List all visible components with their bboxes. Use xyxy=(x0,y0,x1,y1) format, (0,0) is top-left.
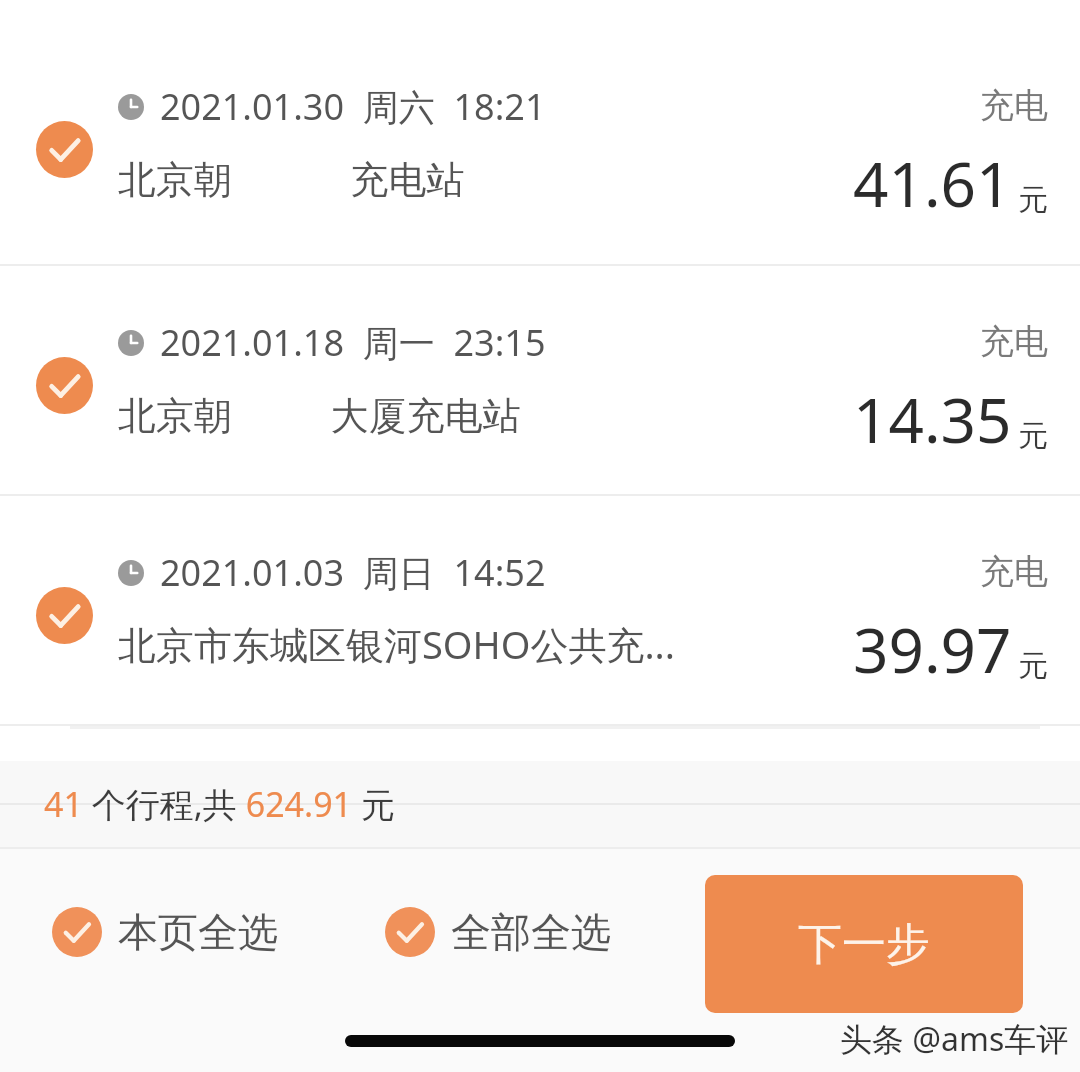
button[interactable]: 2021.01.18 周一 23:15 xyxy=(0,266,1080,494)
staticText: 41.61 xyxy=(853,141,1012,225)
staticText: 元 xyxy=(1018,181,1048,219)
staticText: 充电 xyxy=(980,550,1048,593)
button[interactable]: 本页全选 xyxy=(52,907,278,957)
staticText: 2021.01.03 周日 14:52 xyxy=(160,548,546,597)
staticText: 下一步 xyxy=(798,917,930,972)
staticText: 全部全选 xyxy=(451,907,611,957)
staticText: 41 个行程,共 624.91 元 xyxy=(44,781,395,827)
staticText: 2021.01.18 周一 23:15 xyxy=(160,318,546,367)
staticText: 元 xyxy=(1018,417,1048,455)
staticText: 充电 xyxy=(980,320,1048,363)
staticText: 本页全选 xyxy=(118,907,278,957)
staticText: 元 xyxy=(1018,647,1048,685)
button[interactable]: 2021.01.03 周日 14:52 xyxy=(0,496,1080,724)
button[interactable]: 2021.01.30 周六 18:21 xyxy=(0,0,1080,264)
staticText: 北京市东城区银河SOHO公共充... xyxy=(118,618,675,670)
staticText: 充电 xyxy=(980,84,1048,127)
staticText: 头条 @ams车评 xyxy=(840,1017,1069,1061)
staticText: 39.97 xyxy=(853,607,1012,691)
other: Home indicator xyxy=(345,1035,735,1047)
staticText: 北京朝 大厦充电站 xyxy=(118,388,521,440)
button[interactable]: 下一步 xyxy=(705,875,1023,1013)
staticText: 2021.01.30 周六 18:21 xyxy=(160,82,546,131)
staticText: 北京朝 充电站 xyxy=(118,152,465,204)
staticText: 14.35 xyxy=(853,377,1012,461)
button[interactable]: 全部全选 xyxy=(385,907,611,957)
